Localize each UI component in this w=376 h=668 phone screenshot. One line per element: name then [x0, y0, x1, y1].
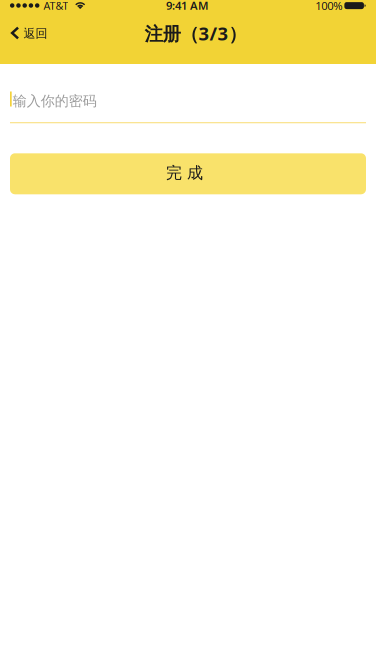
staticText: AT&T	[43, 0, 68, 13]
staticText: 输入你的密码	[13, 92, 97, 110]
staticText: 100%	[315, 0, 342, 13]
button[interactable]: 返回	[0, 14, 59, 52]
staticText: 注册（3/3）	[145, 21, 247, 46]
staticText: 返回	[23, 26, 47, 41]
staticText: 完 成	[166, 163, 203, 183]
staticText: 9:41 AM	[166, 0, 209, 13]
button[interactable]: 完 成	[10, 153, 366, 194]
